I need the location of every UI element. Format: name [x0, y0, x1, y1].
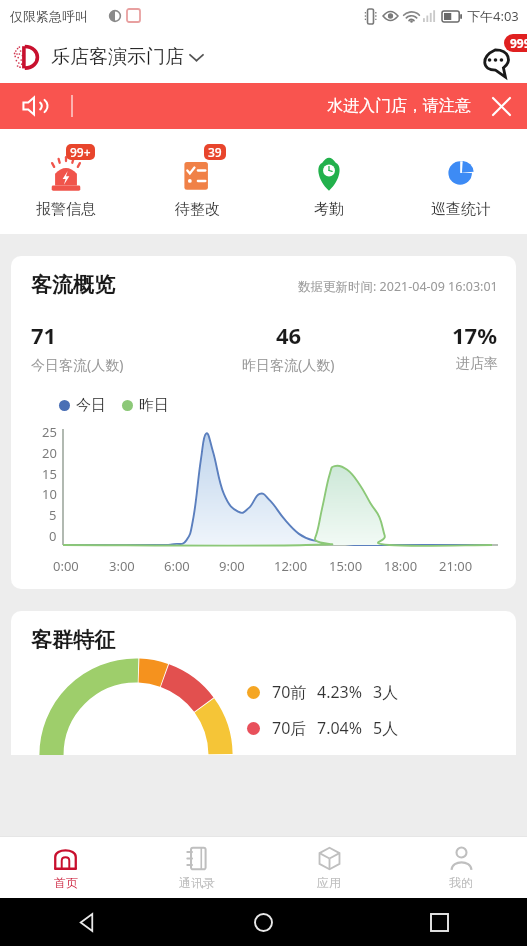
button[interactable]: 考勤: [263, 140, 395, 223]
other: Back: [79, 914, 96, 931]
staticText: 12:00: [274, 557, 308, 575]
staticText: 通讯录: [179, 875, 215, 890]
staticText: 71: [31, 320, 57, 350]
button[interactable]: 客群特征: [11, 611, 516, 755]
button[interactable]: 我的: [395, 840, 527, 895]
staticText: 仅限紧急呼叫: [10, 8, 88, 24]
staticText: 我的: [449, 875, 473, 890]
button[interactable]: 巡查统计: [395, 140, 527, 223]
staticText: 首页: [54, 875, 78, 890]
button[interactable]: 客流概览: [11, 256, 516, 589]
button[interactable]: 应用: [263, 840, 395, 895]
staticText: 70前: [272, 681, 307, 703]
staticText: 今日客流(人数): [31, 355, 124, 374]
button[interactable]: 39: [131, 140, 263, 223]
staticText: 5人: [373, 717, 399, 739]
button[interactable]: 99+: [0, 140, 131, 223]
staticText: 3:00: [109, 557, 135, 575]
staticText: 21:00: [439, 557, 473, 575]
staticText: 17%: [452, 320, 498, 350]
other: Home: [254, 913, 273, 932]
staticText: 46: [276, 320, 302, 350]
staticText: 巡查统计: [431, 200, 491, 219]
other: Announcement: [22, 96, 46, 116]
staticText: 昨日客流(人数): [242, 355, 335, 374]
staticText: 乐店客演示门店: [51, 45, 184, 69]
staticText: 99+: [70, 144, 91, 160]
staticText: 18:00: [384, 557, 418, 575]
staticText: 下午4:03: [467, 7, 519, 25]
staticText: 5: [49, 506, 57, 524]
staticText: 客流概览: [31, 272, 115, 298]
staticText: 客群特征: [31, 627, 115, 653]
button[interactable]: Close: [493, 98, 510, 115]
staticText: 水进入门店，请注意: [327, 96, 479, 116]
staticText: 进店率: [456, 355, 498, 373]
staticText: 7.04%: [317, 717, 363, 739]
staticText: 20: [42, 444, 57, 462]
staticText: 6:00: [164, 557, 190, 575]
staticText: 3人: [373, 681, 399, 703]
staticText: 15: [42, 465, 57, 483]
button[interactable]: 乐店客演示门店: [14, 42, 203, 72]
staticText: 4.23%: [317, 681, 363, 703]
button[interactable]: 首页: [0, 840, 131, 895]
staticText: 9:00: [219, 557, 245, 575]
staticText: 应用: [317, 875, 341, 890]
button[interactable]: 通讯录: [131, 840, 263, 895]
staticText: 10: [42, 485, 57, 503]
staticText: 报警信息: [36, 200, 96, 219]
staticText: 15:00: [329, 557, 363, 575]
staticText: 39: [208, 144, 222, 160]
other: Recents: [431, 914, 448, 931]
staticText: 0:00: [53, 557, 79, 575]
staticText: 今日: [76, 396, 106, 415]
staticText: 70后: [272, 717, 307, 739]
staticText: 25: [42, 423, 57, 441]
staticText: 待整改: [175, 200, 220, 219]
staticText: 数据更新时间: 2021-04-09 16:03:01: [298, 278, 498, 295]
staticText: 0: [49, 527, 57, 545]
staticText: 考勤: [314, 200, 344, 219]
button[interactable]: Messages: [477, 34, 527, 80]
staticText: 昨日: [139, 396, 169, 415]
staticText: 999: [510, 35, 527, 51]
